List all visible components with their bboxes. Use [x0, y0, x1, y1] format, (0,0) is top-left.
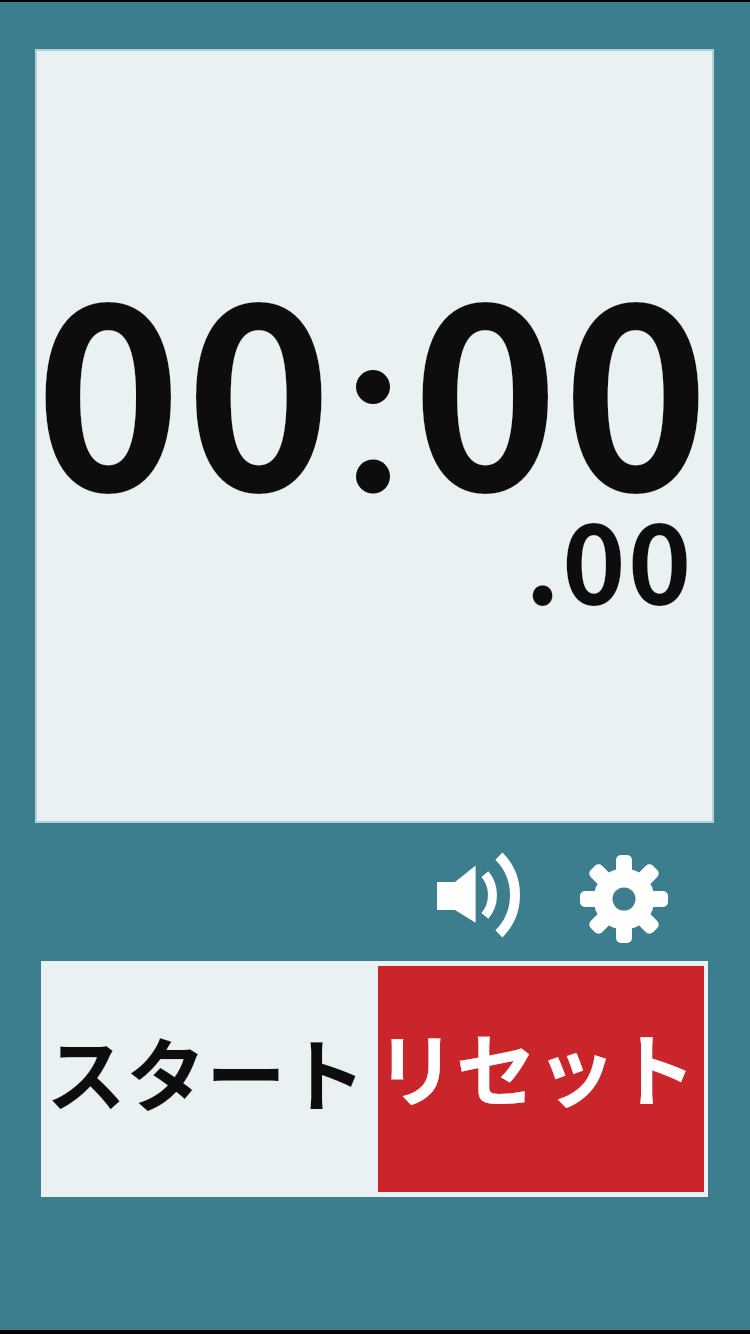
button[interactable]: スタート	[41, 961, 378, 1197]
staticText: 00	[33, 201, 334, 563]
staticText: 00	[410, 201, 711, 563]
staticText: スタート	[46, 1012, 366, 1128]
button[interactable]: リセット	[378, 966, 704, 1192]
button[interactable]	[578, 852, 670, 946]
staticText: リセット	[376, 1007, 696, 1123]
staticText: .00	[525, 479, 694, 635]
button[interactable]	[410, 845, 525, 945]
